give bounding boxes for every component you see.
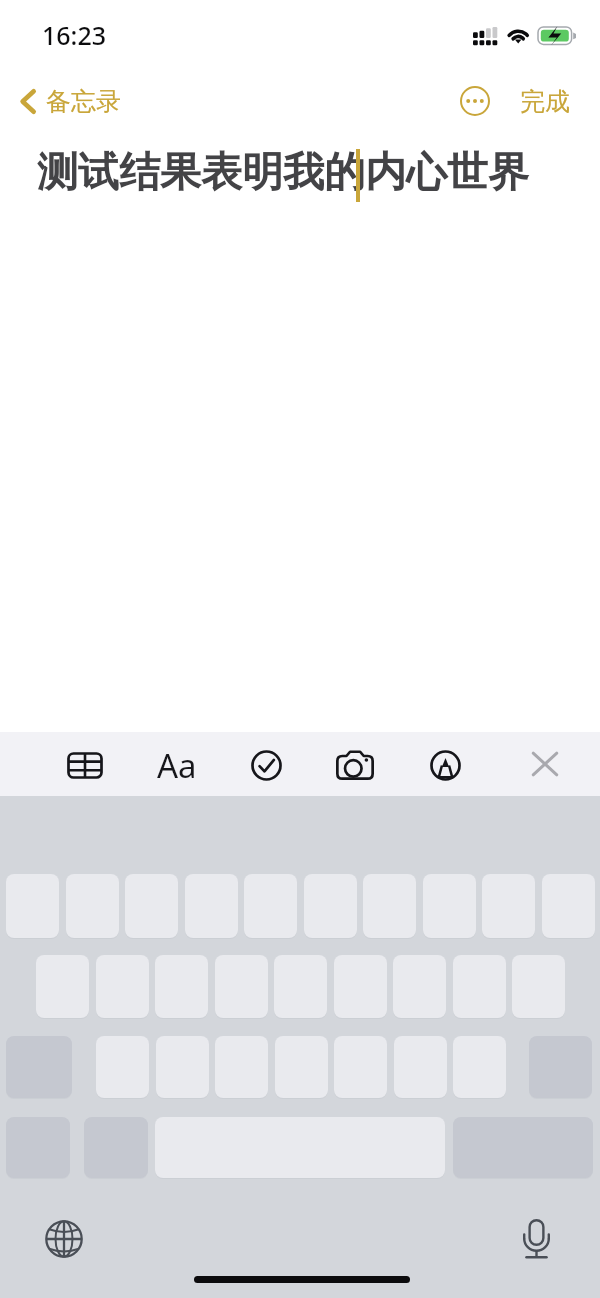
button[interactable]: Close keyboard [521, 740, 569, 788]
button[interactable]: Insert table [61, 742, 109, 788]
button[interactable]: More options [453, 79, 497, 123]
button[interactable]: 备忘录 [14, 82, 131, 121]
staticText: 完成 [520, 86, 570, 117]
button[interactable]: Switch keyboard [42, 1217, 86, 1261]
button[interactable]: 完成 [514, 82, 576, 121]
staticText: 备忘录 [46, 86, 121, 117]
staticText: Aa [157, 743, 197, 788]
button[interactable]: Camera [331, 741, 379, 789]
staticText: 测试结果表明我的内心世界 [37, 147, 529, 199]
button[interactable]: Aa [153, 742, 201, 788]
button[interactable]: Markup [421, 741, 469, 789]
staticText: 16:23 [42, 18, 107, 52]
button[interactable]: Dictate [514, 1217, 558, 1261]
button[interactable]: Checklist [242, 741, 290, 789]
